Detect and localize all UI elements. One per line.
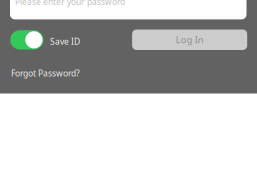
staticText: Save ID xyxy=(50,36,80,47)
button[interactable]: Please enter your password xyxy=(10,0,246,19)
button[interactable]: Forgot Password? xyxy=(11,67,80,79)
button[interactable]: Save ID xyxy=(10,30,80,49)
button[interactable]: Log In xyxy=(132,29,247,50)
staticText: Please enter your password xyxy=(15,0,125,7)
staticText: Forgot Password? xyxy=(11,67,80,79)
staticText: Log In xyxy=(176,33,204,46)
